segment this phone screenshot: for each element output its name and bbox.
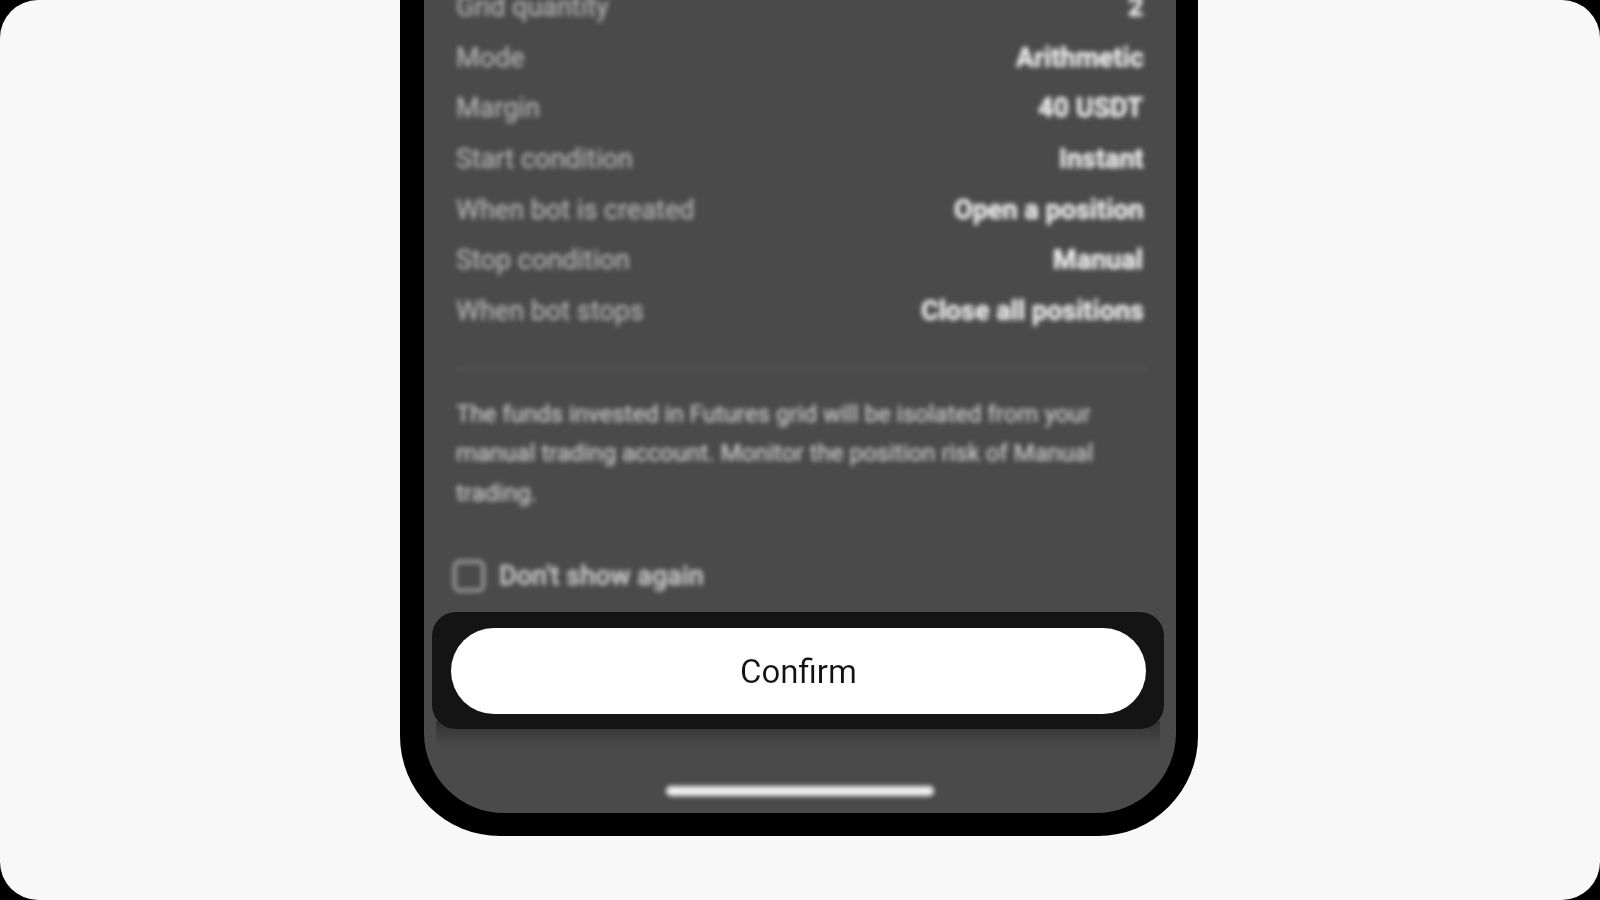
button[interactable]: Stop condition [456,239,1144,281]
staticText: Open a position [954,194,1144,226]
button[interactable]: Margin [456,87,1144,129]
staticText: Arithmetic [1016,42,1144,74]
staticText: Confirm [740,652,857,691]
button[interactable]: Confirm [451,628,1146,714]
staticText: Stop condition [456,244,630,276]
staticText: Manual [1053,244,1144,276]
staticText: Close all positions [921,295,1144,327]
button[interactable]: Mode [456,37,1144,79]
staticText: Grid quantity [456,0,609,23]
button[interactable]: Don't show again checkbox [453,552,733,600]
button[interactable]: When bot stops [456,290,1144,332]
staticText: When bot stops [456,295,644,327]
staticText: 2 [1128,0,1144,23]
staticText: When bot is created [456,194,695,226]
staticText: Instant [1059,143,1144,175]
other: Don't show again checkbox [453,560,485,592]
staticText: Margin [456,92,540,124]
button[interactable]: Grid quantity [456,0,1144,28]
staticText: The funds invested in Futures grid will … [456,400,1116,507]
staticText: Mode [456,42,525,74]
staticText: Don't show again [499,560,704,592]
button[interactable]: When bot is created [456,189,1144,231]
button[interactable]: Start condition [456,138,1144,180]
staticText: 40 USDT [1038,92,1144,124]
staticText: Start condition [456,143,633,175]
